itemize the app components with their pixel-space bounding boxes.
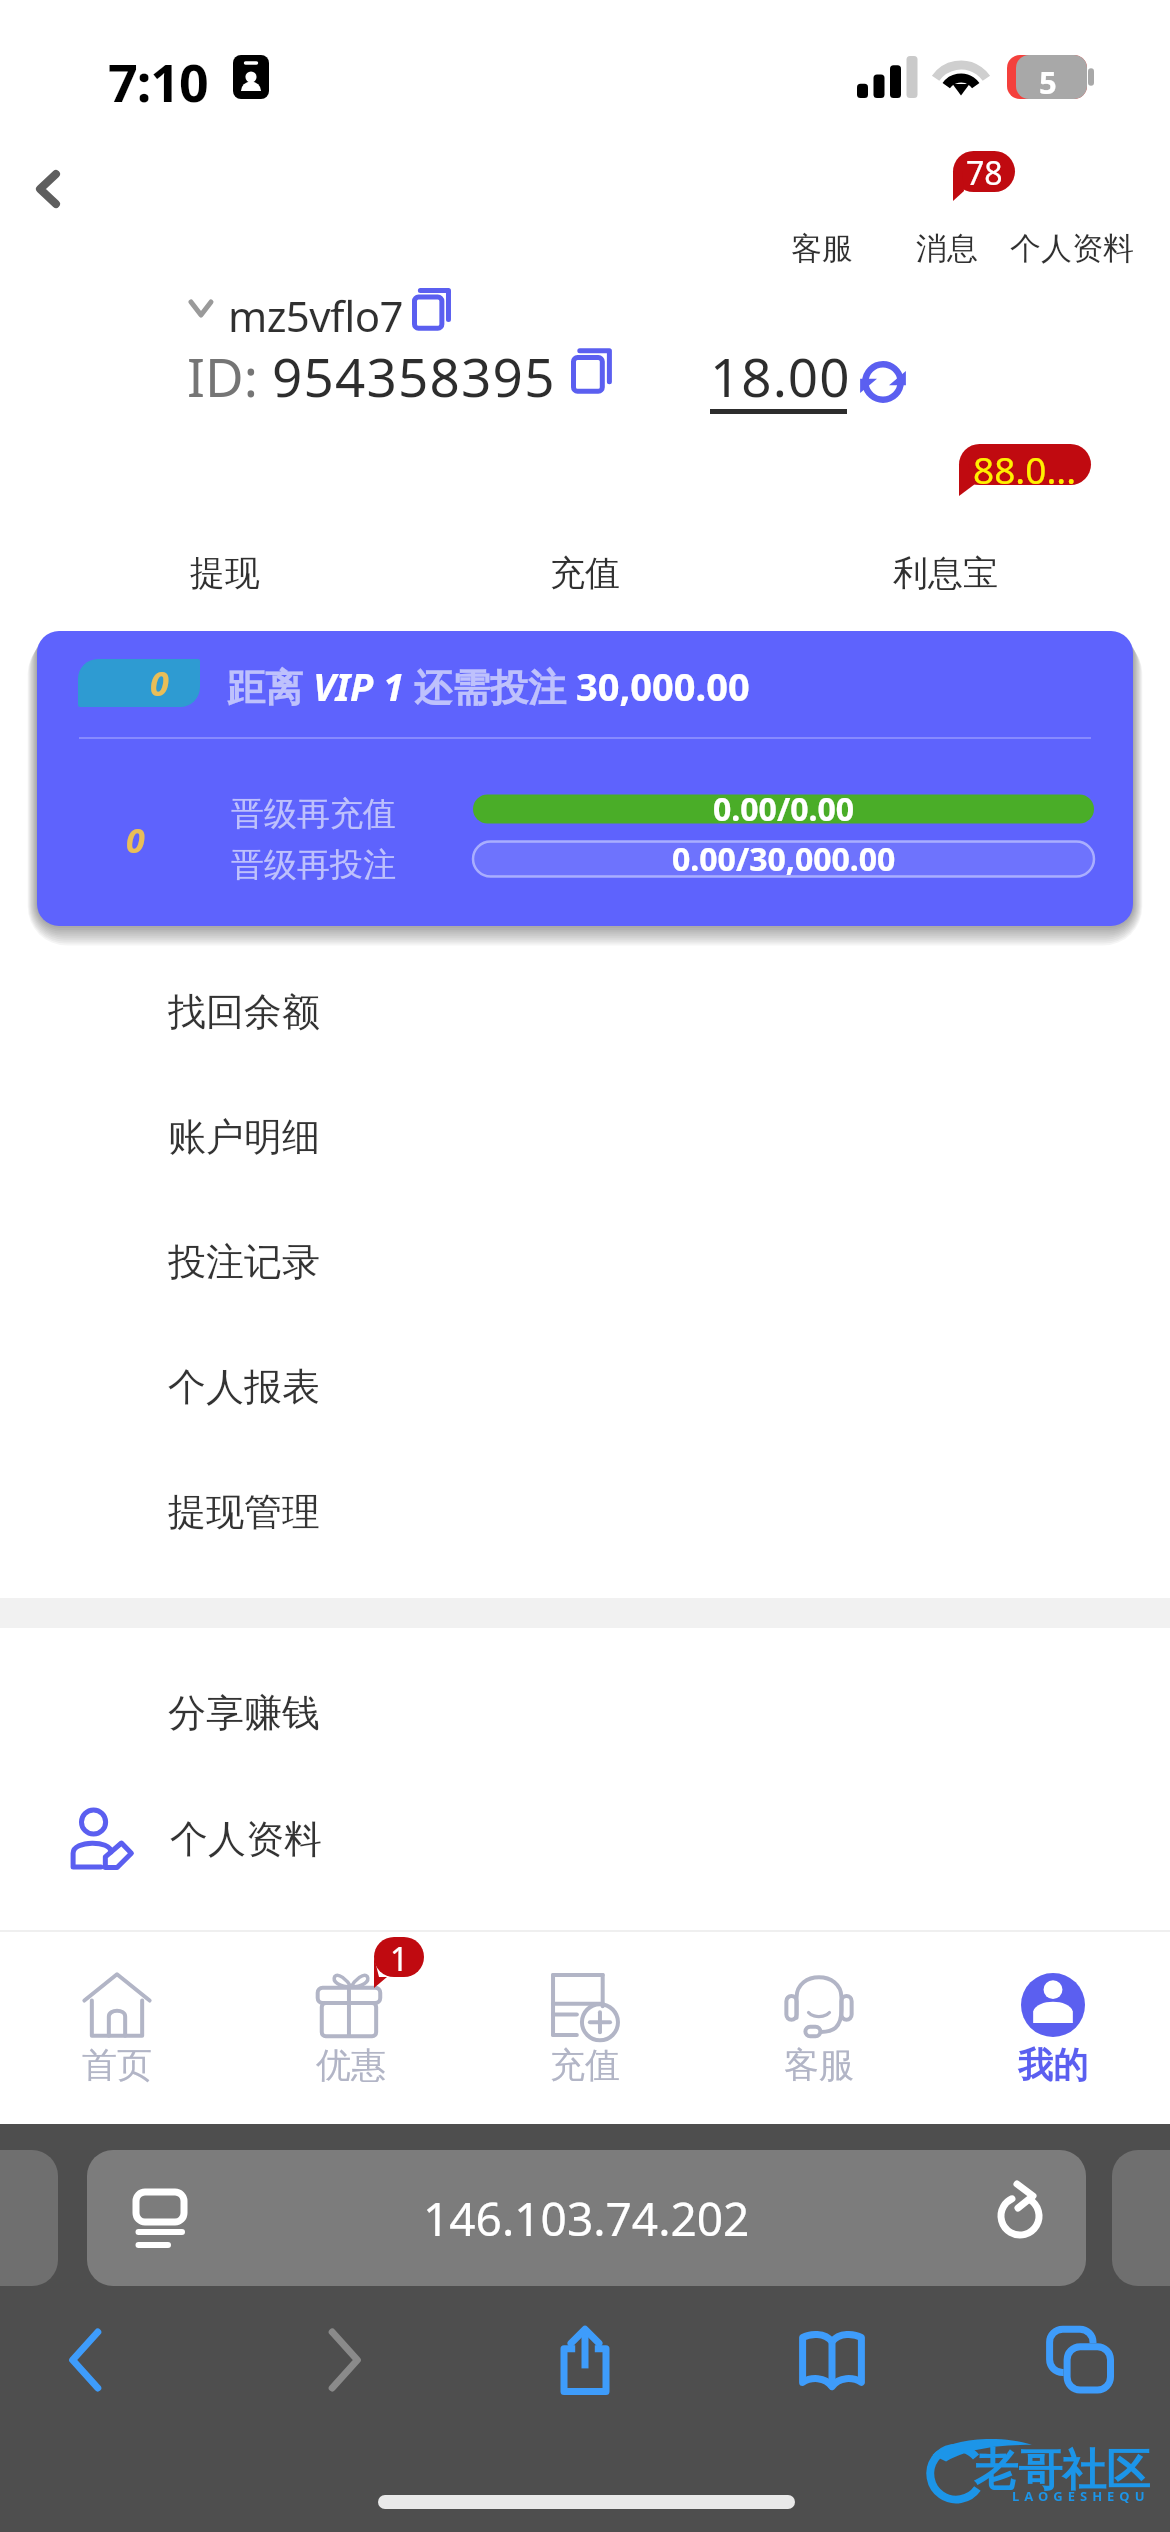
button[interactable]: Refresh balance [857, 356, 909, 408]
staticText: 客服 [791, 229, 853, 268]
staticText: 利息宝 [893, 551, 998, 595]
button[interactable]: 提现 [160, 538, 290, 608]
staticText: 78 [966, 151, 1003, 192]
staticText: ID: [187, 340, 272, 412]
button[interactable]: mz5vflo7 [228, 287, 403, 344]
button[interactable]: 利息宝 [875, 538, 1015, 608]
button[interactable]: Page settings [124, 2184, 196, 2256]
button[interactable]: 个人资料 [1009, 212, 1135, 284]
staticText: 0.00/30,000.00 [672, 837, 896, 881]
button[interactable]: Back [6, 152, 90, 226]
staticText: VIP 1 [313, 660, 404, 712]
button[interactable]: Tabs [1037, 2318, 1121, 2402]
staticText: 7:10 [108, 46, 208, 117]
staticText: LAOGESHEQU [1012, 2487, 1150, 2505]
button[interactable]: 消息 [897, 212, 997, 284]
staticText: 个人资料 [170, 1815, 322, 1863]
button[interactable]: Copy ID [571, 349, 615, 393]
button[interactable]: 找回余额 [0, 950, 1170, 1074]
button[interactable]: Back [46, 2318, 130, 2402]
button[interactable]: Bookmarks [790, 2318, 874, 2402]
staticText: 0 [150, 660, 169, 706]
staticText: 晋级再充值 [231, 793, 396, 835]
button[interactable]: 投注记录 [0, 1200, 1170, 1324]
button[interactable]: Reload page [986, 2180, 1054, 2248]
staticText: 0.00/0.00 [713, 787, 855, 831]
button[interactable]: Forward [300, 2318, 384, 2402]
staticText: 还需投注 [404, 660, 576, 712]
staticText: 提现管理 [168, 1488, 320, 1536]
button[interactable]: 首页 [0, 1930, 234, 2124]
staticText: 消息 [916, 229, 978, 268]
button[interactable]: 146.103.74.202 [87, 2150, 1086, 2286]
staticText: 5 [1039, 61, 1057, 103]
staticText: 88.0... [973, 444, 1077, 485]
button[interactable]: Share [543, 2318, 627, 2402]
staticText: 投注记录 [168, 1238, 320, 1286]
staticText: 1 [390, 1937, 409, 1977]
staticText: 954358395 [272, 340, 556, 412]
button[interactable]: 客服 [702, 1930, 936, 2124]
staticText: 提现 [190, 551, 260, 595]
staticText: 老哥社区 [974, 2443, 1150, 2498]
staticText: mz5vflo7 [228, 287, 403, 344]
staticText: 晋级再投注 [231, 844, 396, 886]
staticText: 我的 [1018, 2043, 1088, 2087]
staticText: 分享赚钱 [168, 1689, 320, 1737]
staticText: 18.00 [710, 340, 851, 412]
staticText: 账户明细 [168, 1113, 320, 1161]
staticText: 距离 [227, 660, 313, 712]
staticText: 优惠 [316, 2043, 386, 2087]
staticText: 充值 [550, 2043, 620, 2087]
staticText: 个人报表 [168, 1363, 320, 1411]
button[interactable]: 个人报表 [0, 1325, 1170, 1449]
button[interactable]: 18.00 [710, 340, 851, 412]
staticText: 客服 [784, 2043, 854, 2087]
staticText: 30,000.00 [576, 660, 750, 712]
button[interactable]: 提现管理 [0, 1450, 1170, 1574]
button[interactable]: 充值 [520, 538, 650, 608]
button[interactable]: 充值 [468, 1930, 702, 2124]
staticText: 0 [126, 817, 145, 863]
button[interactable]: 客服 [772, 212, 872, 284]
button[interactable]: 1 [234, 1930, 468, 2124]
staticText: 146.103.74.202 [423, 2187, 750, 2250]
staticText: 首页 [82, 2043, 152, 2087]
staticText: 个人资料 [1010, 229, 1134, 268]
staticText: 找回余额 [168, 988, 320, 1036]
button[interactable]: Copy username [412, 289, 454, 331]
button[interactable]: 分享赚钱 [0, 1652, 1170, 1774]
button[interactable]: 个人资料 [0, 1778, 1170, 1900]
button[interactable]: 账户明细 [0, 1075, 1170, 1199]
button[interactable]: 0 [37, 631, 1133, 926]
staticText: 充值 [550, 551, 620, 595]
button[interactable]: 我的 [936, 1930, 1170, 2124]
